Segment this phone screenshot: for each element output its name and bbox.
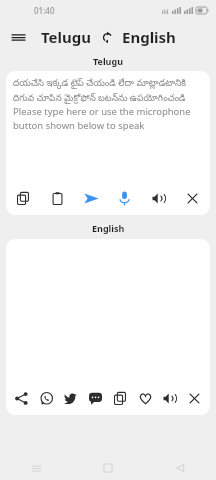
button[interactable]: Share xyxy=(11,388,32,409)
button[interactable]: Favorite xyxy=(135,388,156,409)
staticText: Telugu xyxy=(41,27,92,47)
staticText: 01:40 xyxy=(34,5,55,16)
button[interactable]: WhatsApp xyxy=(36,388,57,409)
button[interactable]: Swap languages xyxy=(97,27,117,47)
staticText: Telugu xyxy=(93,55,124,67)
button[interactable]: Twitter xyxy=(60,388,81,409)
button[interactable]: Send xyxy=(81,188,102,209)
button[interactable]: Copy xyxy=(13,188,34,209)
button[interactable]: Clear xyxy=(184,388,205,409)
staticText: Please type here or use the microphone b… xyxy=(13,105,204,131)
button[interactable]: Speak xyxy=(159,388,180,409)
staticText: English xyxy=(122,27,176,47)
button[interactable]: Microphone xyxy=(114,188,135,209)
button[interactable]: Send SMS xyxy=(85,388,106,409)
button[interactable]: Copy xyxy=(110,388,131,409)
button[interactable]: Menu xyxy=(5,24,31,50)
button[interactable]: Clear xyxy=(182,188,203,209)
staticText: English xyxy=(92,222,125,234)
button[interactable]: Paste xyxy=(47,188,68,209)
staticText: దయచేసి ఇక్కడ టైప్ చేయండి లేదా మాట్లాడటాన… xyxy=(13,76,204,105)
button[interactable]: Speak xyxy=(148,188,169,209)
button[interactable]: Telugu xyxy=(39,23,94,51)
button[interactable]: English xyxy=(120,23,178,51)
